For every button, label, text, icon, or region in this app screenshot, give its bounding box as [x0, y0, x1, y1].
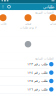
- button[interactable]: طلب رقم ١٢٦: [0, 85, 56, 94]
- button[interactable]: طلب رقم ١٢٥: [0, 77, 56, 85]
- staticText: طلب رقم ١٢٣: [27, 62, 48, 66]
- button[interactable]: طلب رقم ١٢٤: [0, 69, 56, 77]
- staticText: حسابي: [49, 22, 56, 25]
- button[interactable]: Search: [6, 3, 12, 10]
- staticText: عروض: [24, 22, 31, 25]
- staticText: لا توجد طلبات: [19, 26, 36, 29]
- staticText: طلباتي: [42, 4, 53, 9]
- button[interactable]: عروض: [19, 14, 36, 25]
- button[interactable]: حسابي: [44, 14, 56, 25]
- button[interactable]: طلب رقم ١٢٣: [0, 60, 56, 69]
- staticText: طلب رقم ١٢٦: [27, 87, 48, 91]
- staticText: طلب رقم ١٢٤: [27, 71, 48, 74]
- staticText: الطلبات السابقة: [34, 57, 53, 60]
- staticText: الخدمات السريعة: [34, 11, 53, 14]
- button[interactable]: طلب: [0, 14, 11, 25]
- staticText: طلب: [0, 22, 6, 25]
- staticText: طلب رقم ١٢٥: [27, 79, 48, 83]
- button[interactable]: More options: [0, 3, 6, 10]
